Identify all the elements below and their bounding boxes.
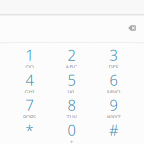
staticText: 7 [25,95,33,115]
button[interactable]: 8 [50,93,92,118]
button[interactable]: 1 [8,43,50,68]
staticText: 5 [67,70,75,90]
staticText: 3 [109,45,117,65]
button[interactable]: 9 [92,93,134,118]
button[interactable]: 4 [8,68,50,93]
staticText: ABC [65,63,77,71]
button[interactable]: 3 [92,43,134,68]
staticText: GHI [24,88,34,96]
staticText: 1 [25,45,33,65]
staticText: * [25,120,33,140]
staticText: 0 [67,120,75,140]
staticText: JKL [67,88,75,96]
staticText: MNO [107,88,120,96]
staticText: DEF [108,63,118,71]
staticText: WXYZ [106,113,120,121]
staticText: PQRS [23,113,36,121]
button[interactable]: Delete [123,21,141,35]
staticText: TUV [66,113,76,121]
staticText: 6 [109,70,117,90]
staticText: OO [25,63,33,71]
button[interactable]: 0 [50,118,92,143]
button[interactable]: 2 [50,43,92,68]
button[interactable]: 5 [50,68,92,93]
staticText: 4 [25,70,33,90]
button[interactable]: 7 [8,93,50,118]
staticText: # [109,120,118,140]
button[interactable]: 6 [92,68,134,93]
staticText: 9 [109,95,117,115]
staticText: + [70,138,73,144]
button[interactable]: * [8,118,50,143]
button[interactable]: # [92,118,134,143]
staticText: 8 [67,95,75,115]
staticText: 2 [67,45,75,65]
